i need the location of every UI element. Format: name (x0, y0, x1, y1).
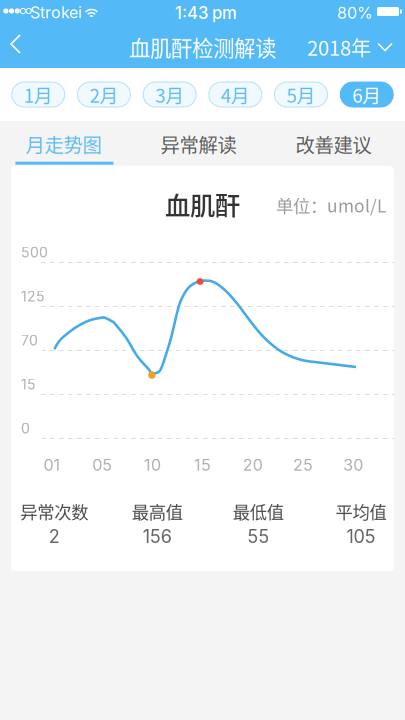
staticText: 105 (347, 526, 376, 547)
button[interactable]: 2月 (71, 74, 137, 114)
staticText: 3月 (155, 81, 184, 108)
button[interactable]: 4月 (202, 74, 268, 114)
staticText: 2月 (89, 81, 118, 108)
staticText: 25 (293, 455, 313, 475)
button[interactable]: Back (0, 26, 44, 68)
staticText: 单位：umol/L (276, 192, 386, 218)
staticText: 1月 (24, 81, 53, 108)
staticText: 6月 (352, 81, 381, 108)
staticText: 改善建议 (295, 130, 371, 158)
button[interactable]: 异常解读 (135, 121, 270, 166)
button[interactable]: 5月 (268, 74, 334, 114)
button[interactable]: 2018年 (307, 26, 405, 68)
staticText: 4月 (221, 81, 250, 108)
staticText: 异常解读 (160, 130, 236, 158)
staticText: 01 (43, 455, 60, 475)
staticText: 血肌酐检测解读 (129, 32, 276, 62)
staticText: 20 (243, 455, 263, 475)
staticText: 70 (21, 332, 38, 349)
button[interactable]: 1月 (5, 74, 71, 114)
staticText: 15 (21, 376, 36, 393)
staticText: 5月 (287, 81, 316, 108)
staticText: 30 (343, 455, 363, 475)
staticText: 异常次数 (20, 499, 88, 524)
staticText: 血肌酐 (165, 186, 240, 222)
staticText: 10 (144, 455, 161, 475)
staticText: 最低值 (233, 499, 284, 524)
button[interactable]: 改善建议 (270, 121, 405, 166)
staticText: 1:43 pm (175, 3, 237, 23)
staticText: 156 (143, 526, 172, 547)
staticText: 2018年 (307, 32, 371, 61)
button[interactable]: 6月 (334, 74, 400, 114)
staticText: 15 (194, 455, 211, 475)
button[interactable]: 3月 (137, 74, 202, 114)
staticText: 最高值 (132, 499, 183, 524)
staticText: 05 (92, 455, 112, 475)
staticText: Strokei (30, 3, 82, 22)
staticText: 平均值 (336, 499, 387, 524)
staticText: 125 (21, 288, 45, 305)
staticText: 80% (337, 3, 373, 23)
staticText: 55 (247, 526, 269, 547)
staticText: 0 (21, 420, 30, 437)
button[interactable]: 月走势图 (0, 121, 135, 166)
staticText: 月走势图 (25, 130, 101, 158)
staticText: 500 (21, 244, 48, 261)
staticText: 2 (49, 526, 60, 547)
